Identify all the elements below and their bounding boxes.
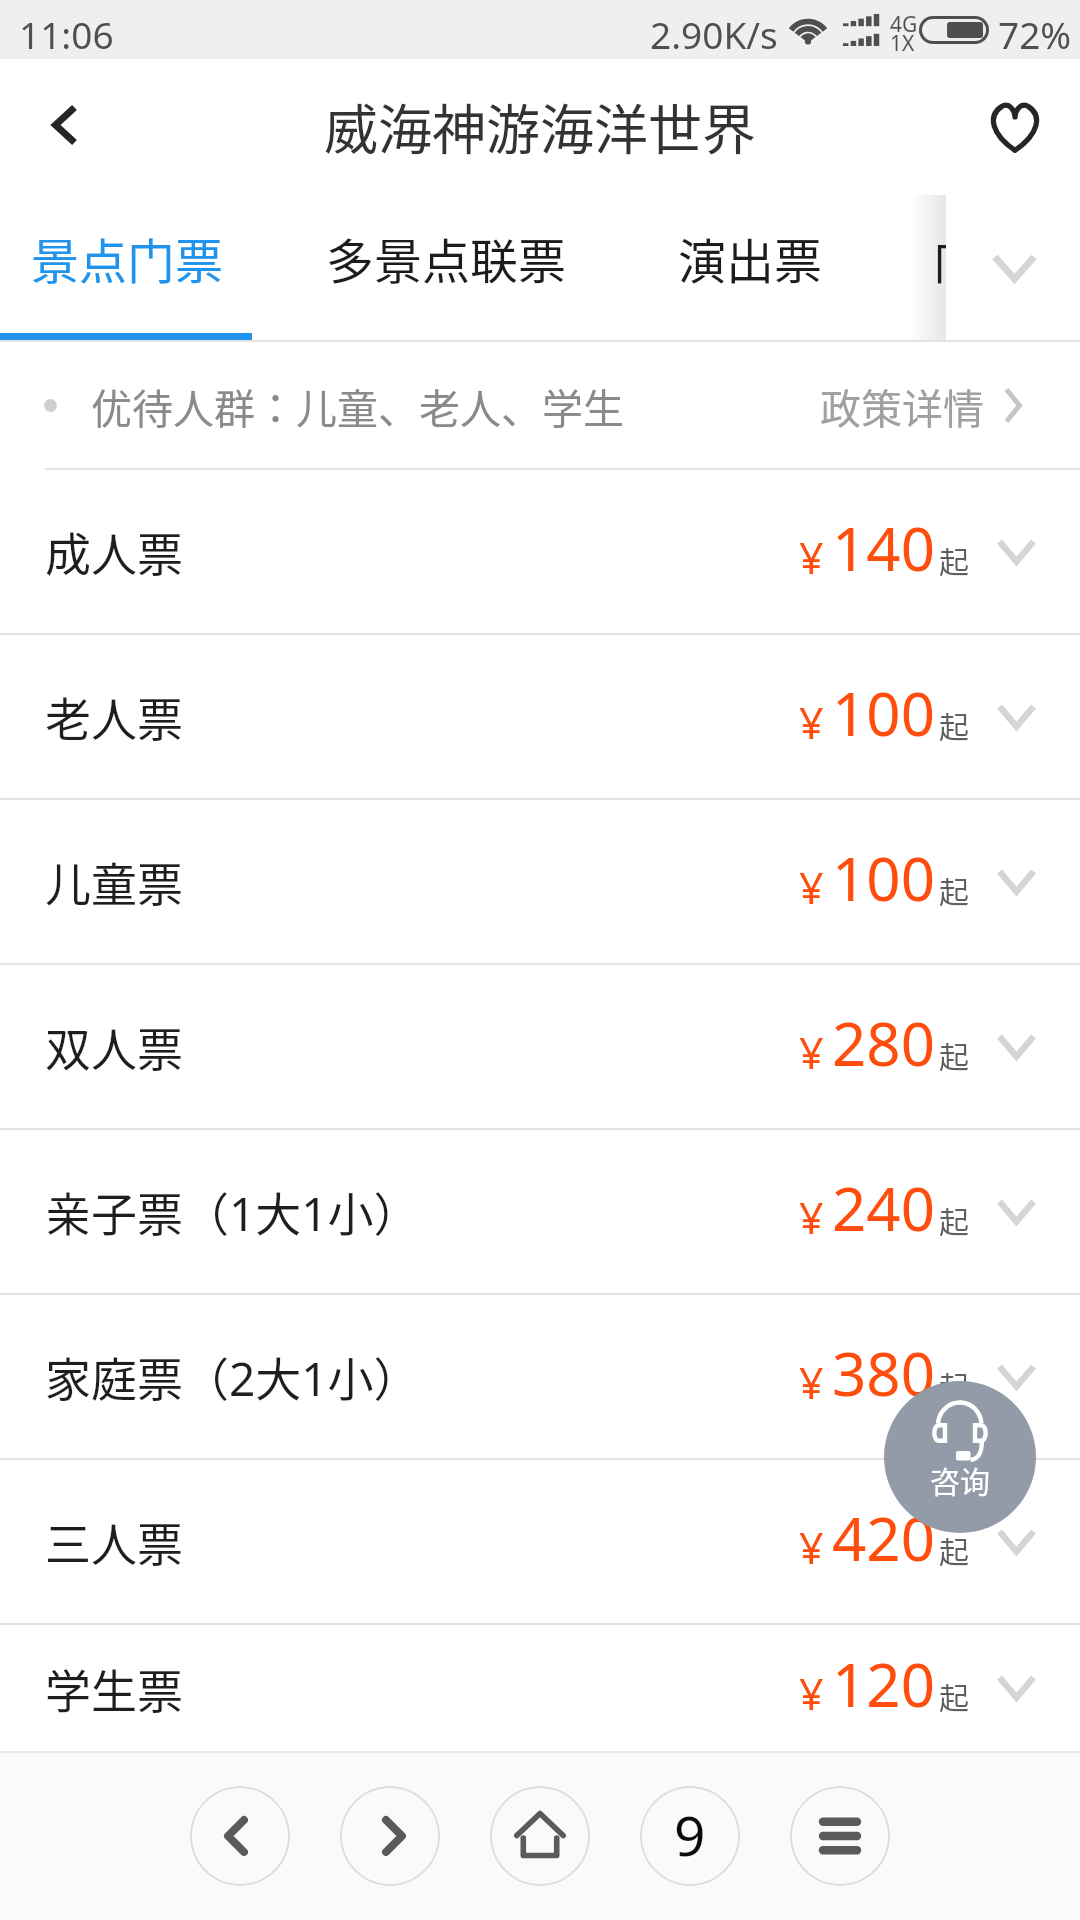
staticText: 演出票: [678, 223, 823, 293]
staticText: 起: [939, 1674, 969, 1717]
staticText: 11:06: [19, 9, 114, 59]
button[interactable]: 窗口: [640, 1786, 740, 1886]
staticText: 三人票: [45, 1508, 183, 1575]
staticText: ¥: [799, 1664, 825, 1723]
staticText: 起: [939, 1363, 969, 1406]
staticText: 亲子票（1大1小）: [45, 1178, 420, 1245]
staticText: 100: [832, 837, 935, 919]
button[interactable]: 菜单: [790, 1786, 890, 1886]
staticText: ¥: [799, 693, 825, 752]
staticText: 起: [939, 1198, 969, 1241]
staticText: 140: [832, 507, 935, 589]
staticText: 门票+: [933, 223, 1056, 293]
staticText: 1X: [890, 29, 915, 58]
staticText: 威海神游海洋世界: [324, 87, 756, 165]
button[interactable]: 三人票: [0, 1460, 1080, 1623]
button[interactable]: 成人票: [0, 470, 1080, 633]
button[interactable]: 家庭票（2大1小）: [0, 1295, 1080, 1458]
staticText: ¥: [799, 1353, 825, 1412]
button[interactable]: 儿童票: [0, 800, 1080, 963]
staticText: 多景点联票: [326, 223, 567, 293]
staticText: 优待人群：儿童、老人、学生: [91, 376, 624, 435]
button[interactable]: 演出票: [678, 195, 823, 342]
staticText: 起: [939, 868, 969, 911]
staticText: 280: [832, 1002, 935, 1084]
staticText: 120: [832, 1643, 935, 1725]
button[interactable]: 多景点联票: [326, 195, 567, 342]
staticText: 咨询: [930, 1458, 990, 1501]
staticText: 起: [939, 538, 969, 581]
staticText: 成人票: [45, 518, 183, 585]
staticText: 双人票: [45, 1013, 183, 1080]
staticText: 420: [832, 1497, 935, 1579]
staticText: 380: [832, 1332, 935, 1414]
staticText: 9: [674, 1797, 706, 1872]
button[interactable]: 主页: [490, 1786, 590, 1886]
staticText: ¥: [799, 1188, 825, 1247]
button[interactable]: 咨询客服: [884, 1381, 1036, 1533]
staticText: 起: [939, 703, 969, 746]
button[interactable]: 学生票: [0, 1625, 1080, 1751]
staticText: 儿童票: [45, 848, 183, 915]
staticText: 老人票: [45, 683, 183, 750]
button[interactable]: 优待人群：儿童、老人、学生: [0, 342, 1080, 468]
button[interactable]: 展开更多分类: [946, 195, 1080, 342]
button[interactable]: 后退: [190, 1786, 290, 1886]
staticText: 240: [832, 1167, 935, 1249]
staticText: 政策详情: [820, 376, 984, 435]
button[interactable]: 门票+: [933, 195, 1056, 342]
staticText: 景点门票: [31, 223, 224, 293]
staticText: ¥: [799, 1023, 825, 1082]
button[interactable]: 老人票: [0, 635, 1080, 798]
staticText: 起: [939, 1033, 969, 1076]
staticText: 72%: [998, 9, 1072, 59]
button[interactable]: 景点门票: [31, 195, 224, 342]
staticText: 学生票: [45, 1655, 183, 1722]
button[interactable]: 返回: [0, 59, 128, 195]
button[interactable]: 收藏: [950, 59, 1080, 195]
staticText: 100: [832, 672, 935, 754]
staticText: ¥: [799, 858, 825, 917]
staticText: 2.90K/s: [650, 9, 778, 59]
staticText: 4G: [890, 10, 918, 39]
staticText: ¥: [799, 1518, 825, 1577]
button[interactable]: 双人票: [0, 965, 1080, 1128]
staticText: 起: [939, 1528, 969, 1571]
button[interactable]: 亲子票（1大1小）: [0, 1130, 1080, 1293]
staticText: ¥: [799, 528, 825, 587]
staticText: 家庭票（2大1小）: [45, 1343, 420, 1410]
button[interactable]: 前进: [340, 1786, 440, 1886]
